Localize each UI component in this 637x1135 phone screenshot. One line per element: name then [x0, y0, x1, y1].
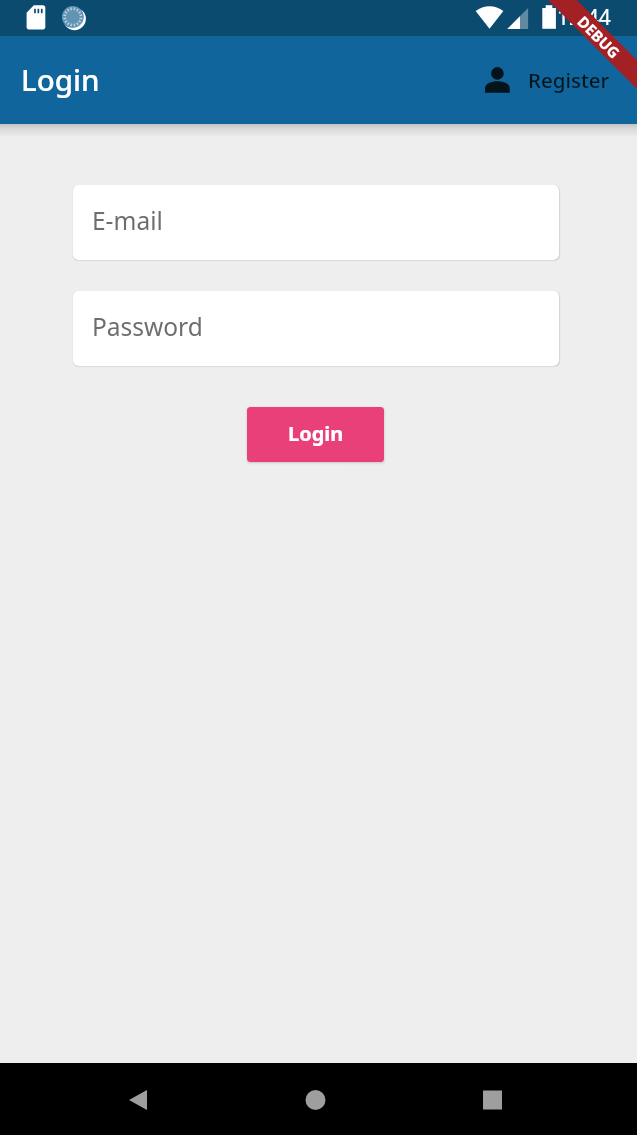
- button[interactable]: Account: [485, 66, 610, 94]
- button[interactable]: E-mail: [73, 185, 559, 260]
- staticText: DEBUG: [573, 11, 624, 62]
- staticText: Register: [528, 66, 610, 94]
- button[interactable]: Login: [247, 407, 384, 462]
- staticText: Login: [21, 59, 100, 99]
- staticText: Login: [288, 420, 344, 447]
- staticText: E-mail: [92, 204, 163, 237]
- other: Account: [485, 67, 510, 93]
- staticText: Password: [92, 310, 203, 343]
- button[interactable]: Password: [73, 291, 559, 366]
- staticText: 12:44: [557, 3, 611, 32]
